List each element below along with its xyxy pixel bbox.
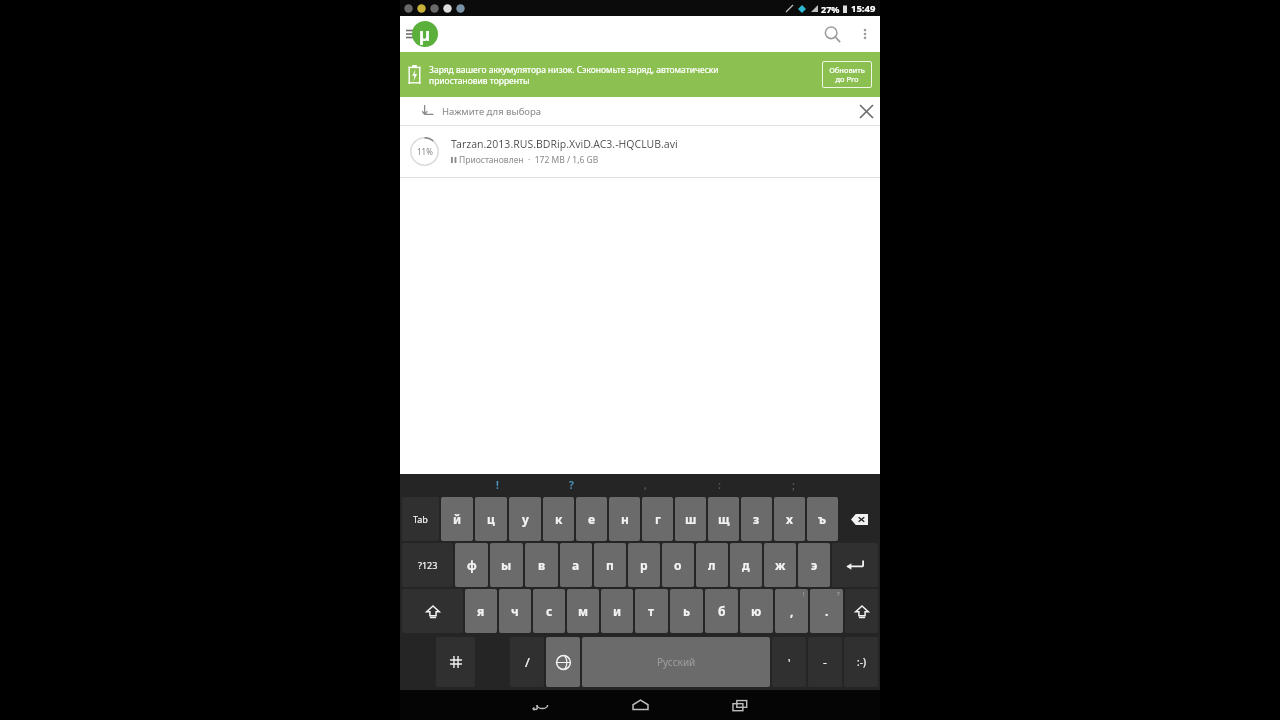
staticText: ц [487,511,495,527]
staticText: т [648,603,655,619]
staticText: Нажмите для выбора [442,105,542,118]
staticText: ы [501,557,512,573]
staticText: , [644,478,647,492]
button[interactable]: Shift [845,589,878,633]
button[interactable]: ы [490,543,523,587]
button[interactable]: Back [490,690,590,720]
button[interactable]: Recent apps [690,690,790,720]
staticText: с [546,603,553,619]
staticText: :-) [857,655,866,669]
staticText: р [640,557,648,573]
button[interactable]: м [567,589,599,633]
button[interactable]: л [696,543,728,587]
button[interactable]: Нажмите для выбора [400,97,880,125]
staticText: ?123 [418,559,438,571]
button[interactable]: й [441,497,473,541]
staticText: к [555,511,563,527]
staticText: ? [837,590,840,598]
button[interactable]: р [628,543,660,587]
button[interactable]: г [642,497,673,541]
staticText: е [588,511,596,527]
button[interactable]: ч [499,589,531,633]
staticText: я [477,603,485,619]
button[interactable]: , [775,589,808,633]
staticText: ь [683,603,691,619]
button[interactable]: ъ [807,497,838,541]
staticText: Заряд вашего аккумулятора низок. Сэконом… [429,64,816,86]
staticText: н [621,511,629,527]
staticText: ' [788,655,791,670]
staticText: г [655,511,661,527]
staticText: э [811,557,818,573]
staticText: Приостановлен · 172 MB / 1,6 GB [459,154,599,166]
button[interactable]: Tab [402,497,439,541]
button[interactable]: и [601,589,633,633]
button[interactable]: Backspace [840,497,878,541]
button[interactable]: о [662,543,694,587]
staticText: ! [496,478,499,492]
staticText: в [538,557,546,573]
staticText: Обновить до Pro [829,65,865,84]
staticText: ч [511,603,519,619]
button[interactable]: ?123 [402,543,453,587]
button[interactable]: у [509,497,541,541]
button[interactable]: д [730,543,762,587]
button[interactable]: More options [850,19,880,49]
staticText: Русский [657,655,696,669]
staticText: µ [419,23,431,46]
button[interactable]: Shift [402,589,463,633]
button[interactable]: е [576,497,607,541]
button[interactable]: Menu [400,21,426,47]
button[interactable]: Search [814,16,850,52]
button[interactable]: ш [675,497,706,541]
button[interactable]: Русский [582,637,770,687]
staticText: л [708,557,716,573]
button[interactable]: э [798,543,830,587]
button[interactable]: Обновить до Pro [829,65,865,84]
button[interactable]: з [741,497,772,541]
button[interactable]: т [635,589,668,633]
button[interactable]: х [774,497,805,541]
button[interactable]: Enter [832,543,878,587]
button[interactable]: б [705,589,738,633]
button[interactable]: а [560,543,592,587]
staticText: п [606,557,614,573]
button[interactable]: Заряд вашего аккумулятора низок. Сэконом… [400,52,880,97]
button[interactable]: ? [534,474,608,496]
button[interactable]: Keyboard settings [436,637,475,687]
staticText: б [718,603,726,619]
button[interactable]: Close [852,97,880,125]
button[interactable]: в [525,543,558,587]
staticText: ю [751,603,762,619]
button[interactable]: / [510,637,544,687]
button[interactable]: - [808,637,842,687]
button[interactable]: Home [590,690,690,720]
button[interactable]: н [609,497,640,541]
button[interactable]: ж [764,543,796,587]
button[interactable]: ю [740,589,773,633]
button[interactable]: щ [708,497,739,541]
staticText: д [742,557,750,573]
button[interactable]: uTorrent [410,19,440,49]
button[interactable]: к [543,497,574,541]
button[interactable]: ф [455,543,488,587]
button[interactable]: Change language [546,637,580,687]
staticText: з [753,511,760,527]
button[interactable]: ! [460,474,534,496]
button[interactable]: ц [475,497,507,541]
button[interactable]: с [533,589,565,633]
staticText: . [825,603,829,619]
button[interactable]: 11% [400,126,880,177]
button[interactable]: п [594,543,626,587]
staticText: м [578,603,589,619]
button[interactable]: ь [670,589,703,633]
button[interactable]: я [465,589,497,633]
staticText: - [823,654,827,670]
staticText: ? [569,478,574,492]
button[interactable]: ' [772,637,806,687]
button[interactable]: . [810,589,843,633]
button[interactable]: :-) [844,637,878,687]
